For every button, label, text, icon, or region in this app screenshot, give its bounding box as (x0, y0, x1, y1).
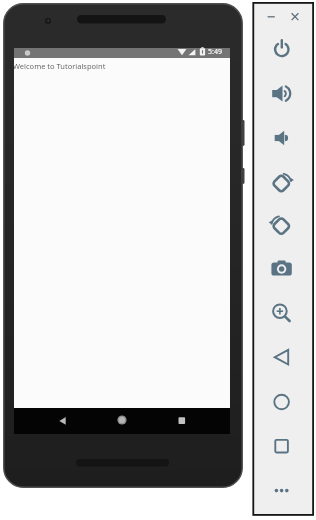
staticText: 5:49 (208, 47, 222, 57)
button[interactable] (257, 430, 309, 462)
button[interactable] (257, 33, 309, 65)
button[interactable] (101, 408, 143, 434)
button[interactable] (257, 78, 309, 110)
button[interactable] (155, 408, 197, 434)
button[interactable] (257, 252, 309, 284)
button[interactable] (257, 386, 309, 418)
button[interactable] (257, 167, 309, 199)
button[interactable] (287, 8, 303, 24)
button[interactable] (50, 408, 92, 434)
button[interactable] (257, 341, 309, 373)
button[interactable] (257, 475, 309, 507)
button[interactable] (257, 210, 309, 242)
button[interactable] (257, 297, 309, 329)
staticText: Welcome to Tutorialspoint (13, 61, 106, 71)
button[interactable] (262, 8, 278, 24)
button[interactable] (257, 122, 309, 154)
